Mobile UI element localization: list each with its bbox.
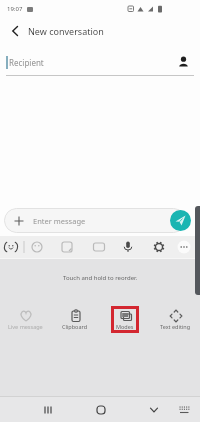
button[interactable] [100, 396, 150, 422]
staticText: Clipboard [62, 323, 88, 330]
staticText: Text editing [160, 323, 191, 330]
button[interactable] [7, 23, 23, 39]
staticText: Enter message [33, 216, 86, 226]
button[interactable]: Recipient [6, 44, 194, 80]
staticText: Modes [116, 323, 134, 330]
button[interactable]: Clipboard [62, 309, 88, 330]
staticText: Touch and hold to reorder. [63, 274, 138, 282]
staticText: Live message [8, 323, 43, 330]
staticText: New conversation [28, 25, 104, 37]
button[interactable] [0, 396, 50, 422]
staticText: Recipient [9, 57, 44, 68]
button[interactable]: Modes [116, 309, 134, 330]
button[interactable] [50, 396, 100, 422]
button[interactable]: Live message [8, 309, 43, 330]
button[interactable]: Text editing [160, 309, 191, 330]
button[interactable] [170, 210, 191, 231]
button[interactable] [150, 396, 200, 422]
button[interactable]: Enter message [4, 208, 186, 233]
staticText: 19:07 [7, 5, 23, 13]
